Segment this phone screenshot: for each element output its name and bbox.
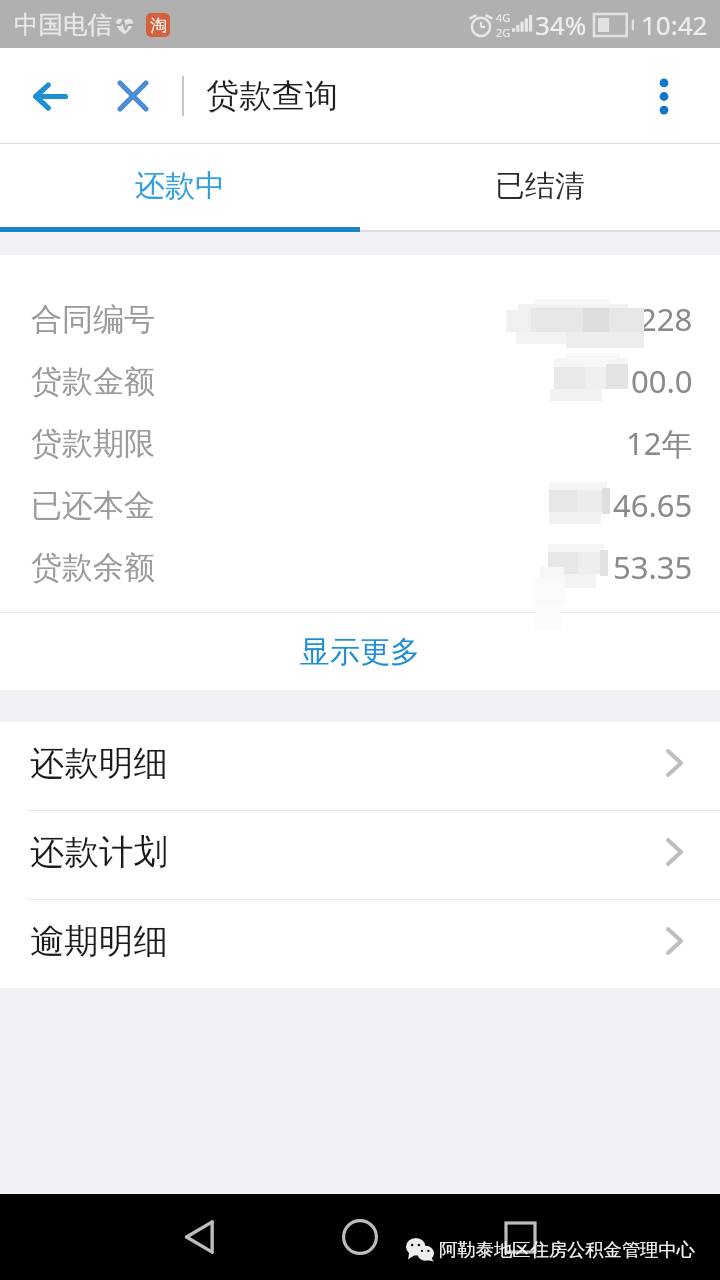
staticText: 中国电信	[14, 9, 112, 40]
staticText: 34%	[535, 7, 587, 42]
staticText: 还款中	[135, 167, 225, 205]
button[interactable]: 逾期明细	[0, 900, 720, 988]
staticText: 53.35	[613, 546, 693, 588]
staticText: 逾期明细	[30, 920, 168, 963]
button[interactable]: 还款计划	[0, 811, 720, 900]
staticText: 已还本金	[31, 486, 155, 525]
staticText: 228	[639, 298, 693, 340]
button[interactable]: 还款明细	[0, 722, 720, 811]
staticText: 已结清	[495, 167, 585, 205]
staticText: 00.0	[631, 360, 693, 402]
staticText: 淘	[150, 15, 167, 36]
button[interactable]: Close	[94, 48, 171, 144]
staticText: 12年	[626, 422, 693, 464]
staticText: 阿勒泰地区住房公积金管理中心	[439, 1238, 696, 1261]
staticText: 4G	[496, 10, 511, 25]
staticText: 还款明细	[30, 742, 168, 785]
button[interactable]: 已结清	[360, 144, 720, 227]
staticText: 10:42	[641, 7, 708, 42]
button[interactable]: Back	[170, 1207, 230, 1267]
staticText: 贷款查询	[206, 75, 338, 117]
button[interactable]: Home	[330, 1207, 390, 1267]
staticText: 46.65	[613, 484, 693, 526]
button[interactable]: Back	[8, 48, 92, 144]
staticText: 合同编号	[31, 300, 155, 339]
staticText: 还款计划	[30, 831, 168, 874]
button[interactable]: Recent apps	[490, 1207, 550, 1267]
staticText: 贷款期限	[31, 424, 155, 463]
staticText: 2G	[496, 25, 511, 40]
staticText: 贷款金额	[31, 362, 155, 401]
button[interactable]: 还款中	[0, 144, 360, 227]
staticText: 贷款余额	[31, 548, 155, 587]
button[interactable]: 显示更多	[0, 613, 720, 690]
staticText: 显示更多	[300, 633, 420, 671]
button[interactable]: More options	[632, 48, 696, 144]
